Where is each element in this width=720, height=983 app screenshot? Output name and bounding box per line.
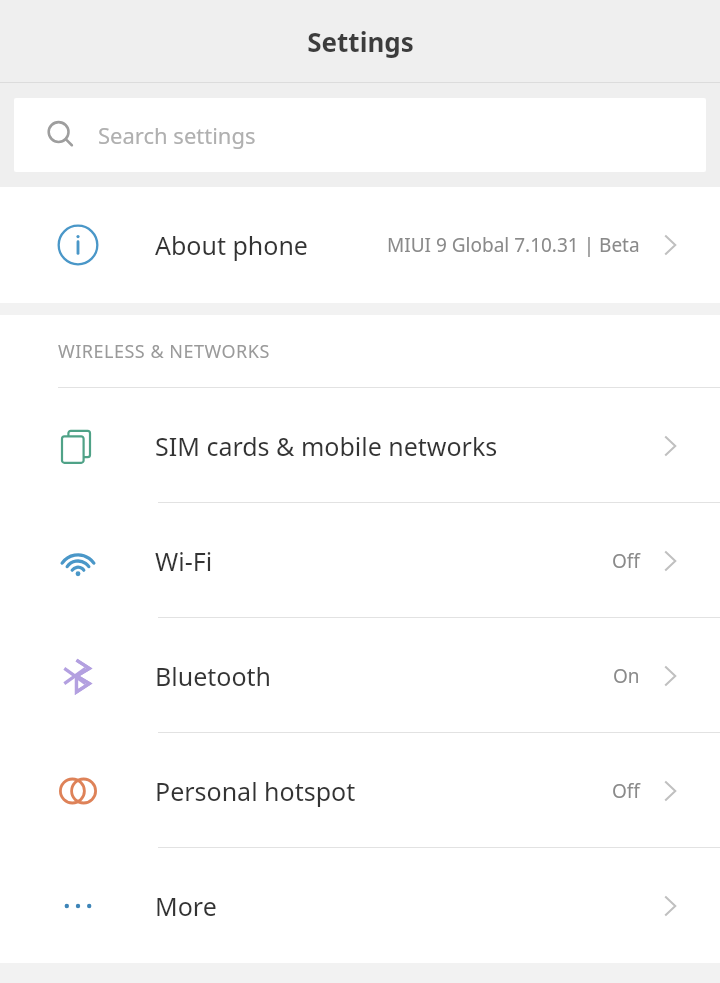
staticText: More	[155, 889, 217, 923]
other: Personal hotspot	[58, 771, 98, 811]
staticText: WIRELESS & NETWORKS	[58, 339, 270, 364]
button[interactable]: More	[0, 848, 720, 963]
staticText: Wi-Fi	[155, 544, 213, 578]
other: More	[58, 886, 98, 926]
button[interactable]: Personal hotspot	[0, 733, 720, 848]
button[interactable]: Bluetooth	[0, 618, 720, 733]
other: Bluetooth	[59, 657, 97, 695]
button[interactable]: Search settings	[14, 98, 706, 172]
staticText: Bluetooth	[155, 659, 272, 693]
staticText: MIUI 9 Global 7.10.31 | Beta	[387, 232, 640, 258]
button[interactable]: Wi-Fi	[0, 503, 720, 618]
other: SIM cards	[58, 426, 98, 466]
other: About phone	[57, 224, 99, 266]
staticText: Search settings	[98, 120, 256, 150]
staticText: Personal hotspot	[155, 774, 356, 808]
staticText: Off	[612, 548, 640, 574]
staticText: Off	[612, 778, 640, 804]
staticText: Settings	[307, 24, 414, 59]
staticText: On	[613, 663, 640, 689]
other: Wi-Fi	[56, 539, 100, 583]
button[interactable]: About phone	[0, 187, 720, 303]
button[interactable]: SIM cards	[0, 388, 720, 503]
staticText: SIM cards & mobile networks	[155, 429, 498, 463]
staticText: About phone	[155, 228, 308, 262]
